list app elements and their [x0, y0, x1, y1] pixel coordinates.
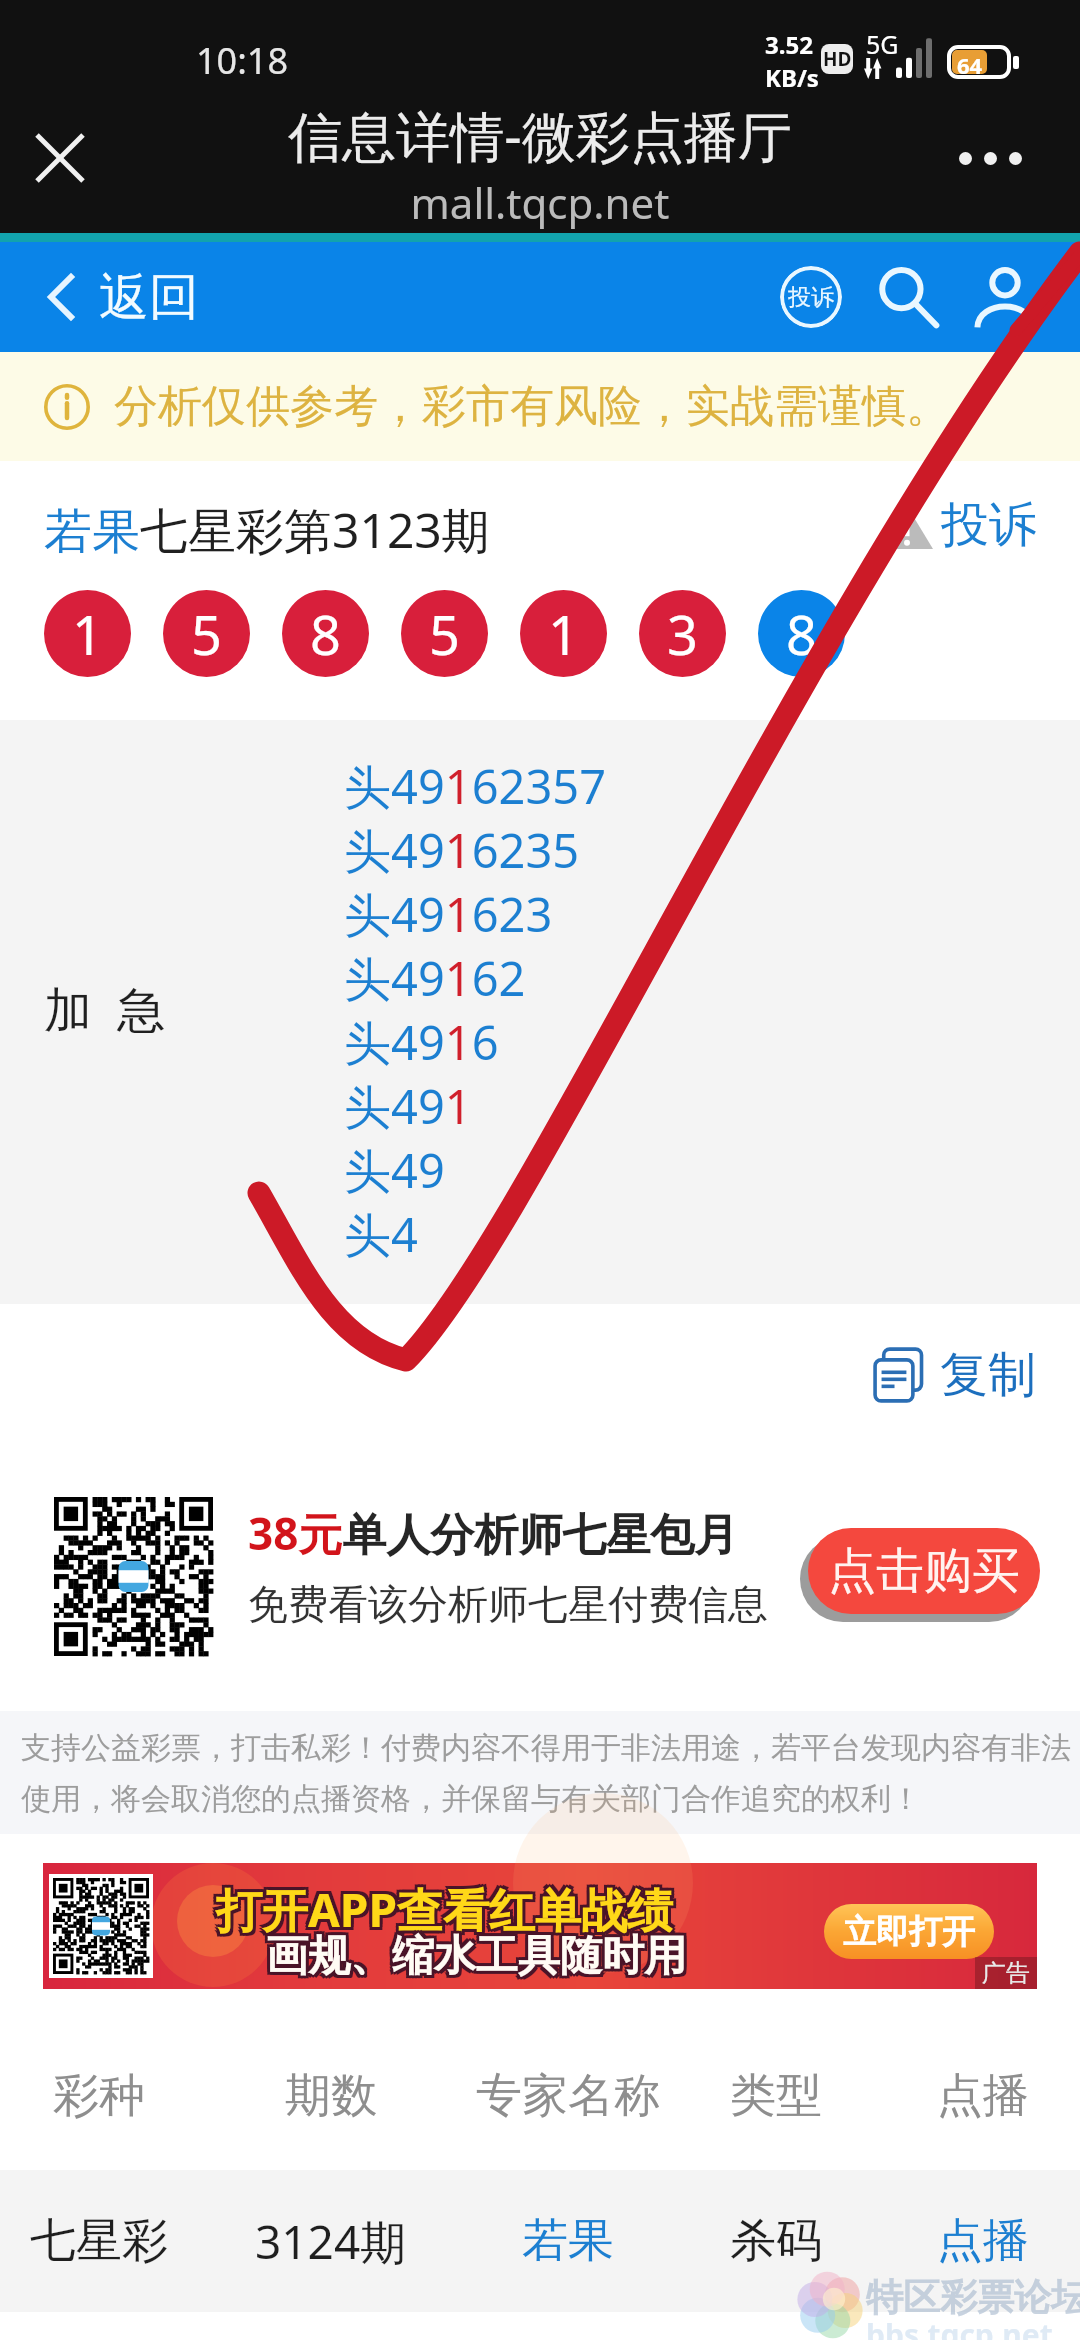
- button[interactable]: Account: [963, 252, 1047, 342]
- staticText: 3: [667, 597, 698, 671]
- staticText: 头491623: [344, 882, 553, 946]
- staticText: bbs.tqcp.net: [866, 2314, 1053, 2340]
- staticText: 1: [548, 597, 579, 671]
- staticText: 1: [72, 597, 103, 671]
- staticText: 5: [429, 597, 460, 671]
- staticText: 画规、缩水工具随时用: [269, 1933, 689, 1986]
- staticText: 点播: [937, 2067, 1029, 2125]
- staticText: 若果七星彩第3123期: [44, 497, 490, 563]
- staticText: 38元单人分析师七星包月: [248, 1503, 739, 1563]
- staticText: 打开APP查看红单战绩: [219, 1875, 676, 1938]
- staticText: 5G: [866, 27, 899, 61]
- staticText: 头491: [344, 1074, 472, 1138]
- staticText: 期数: [285, 2067, 377, 2125]
- staticText: 杀码: [730, 2212, 822, 2270]
- staticText: 打开APP查看红单战绩: [213, 1878, 670, 1941]
- staticText: 3124期: [255, 2210, 407, 2273]
- button[interactable]: 复制: [874, 1325, 1036, 1425]
- staticText: 加 急: [44, 976, 165, 1042]
- staticText: 5: [191, 597, 222, 671]
- staticText: 画规、缩水工具随时用: [266, 1933, 686, 1986]
- staticText: HD: [823, 46, 852, 72]
- staticText: 8: [786, 597, 817, 671]
- staticText: 信息详情-微彩点播厅: [0, 98, 1080, 172]
- staticText: 投诉: [941, 495, 1037, 555]
- staticText: 彩种: [53, 2067, 145, 2125]
- staticText: 免费看该分析师七星付费信息: [248, 1579, 768, 1629]
- staticText: 特区彩票论坛: [866, 2274, 1080, 2321]
- staticText: 七星彩: [30, 2212, 168, 2270]
- staticText: 点播: [937, 2212, 1029, 2270]
- staticText: 复制: [940, 1345, 1036, 1405]
- staticText: 打开APP查看红单战绩: [216, 1881, 673, 1944]
- staticText: 类型: [730, 2067, 822, 2125]
- staticText: 打开APP查看红单战绩: [219, 1878, 676, 1941]
- button[interactable]: Close: [18, 116, 102, 200]
- staticText: 画规、缩水工具随时用: [269, 1927, 689, 1980]
- staticText: 打开APP查看红单战绩: [213, 1875, 670, 1938]
- button[interactable]: 投诉: [872, 489, 1048, 561]
- staticText: 专家名称: [476, 2067, 660, 2125]
- staticText: 画规、缩水工具随时用: [269, 1930, 689, 1983]
- staticText: 画规、缩水工具随时用: [263, 1927, 683, 1980]
- button[interactable]: More options: [930, 116, 1050, 200]
- staticText: mall.tqcp.net: [0, 174, 1080, 231]
- staticText: 10:18: [196, 36, 289, 85]
- staticText: 3.52: [765, 28, 813, 61]
- staticText: 分析仅供参考，彩市有风险，实战需谨慎。: [114, 379, 950, 434]
- staticText: 广告: [982, 1958, 1030, 1988]
- staticText: 头49: [344, 1138, 445, 1202]
- staticText: 返回: [99, 266, 199, 329]
- staticText: 头4916: [344, 1010, 499, 1074]
- staticText: 8: [310, 597, 341, 671]
- staticText: 若果: [522, 2212, 614, 2270]
- staticText: 打开APP查看红单战绩: [213, 1881, 670, 1944]
- staticText: 画规、缩水工具随时用: [263, 1933, 683, 1986]
- staticText: 画规、缩水工具随时用: [266, 1927, 686, 1980]
- staticText: 支持公益彩票，打击私彩！付费内容不得用于非法用途，若平台发现内容有非法 使用，将…: [21, 1729, 1079, 1818]
- staticText: 立即打开: [843, 1911, 975, 1953]
- staticText: 点击购买: [828, 1541, 1020, 1601]
- staticText: 投诉: [788, 283, 834, 312]
- button[interactable]: 返回: [48, 251, 199, 343]
- button[interactable]: 打开APP查看红单战绩: [43, 1863, 1037, 1989]
- button[interactable]: 七星彩: [0, 2170, 1080, 2312]
- staticText: 画规、缩水工具随时用: [263, 1930, 683, 1983]
- staticText: 画规、缩水工具随时用: [266, 1930, 686, 1983]
- button[interactable]: Search: [866, 252, 950, 342]
- button[interactable]: Complaint: [770, 252, 852, 342]
- staticText: 头49162357: [344, 754, 607, 818]
- staticText: 打开APP查看红单战绩: [219, 1881, 676, 1944]
- staticText: 打开APP查看红单战绩: [216, 1875, 673, 1938]
- staticText: 头4916235: [344, 818, 580, 882]
- button[interactable]: 点击购买: [808, 1528, 1040, 1614]
- staticText: KB/s: [765, 61, 819, 94]
- staticText: 头49162: [344, 946, 526, 1010]
- staticText: 头4: [344, 1202, 418, 1266]
- staticText: 打开APP查看红单战绩: [216, 1878, 673, 1941]
- staticText: 64: [957, 50, 983, 74]
